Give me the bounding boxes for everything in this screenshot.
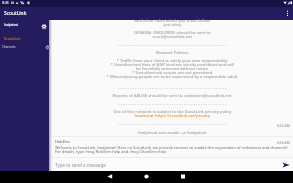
button[interactable]: [0, 38, 41, 46]
button[interactable]: [0, 20, 40, 31]
button[interactable]: [0, 31, 52, 38]
button[interactable]: Type to send a message: [55, 162, 281, 168]
button[interactable]: More options: [282, 7, 293, 20]
button[interactable]: Recents: [165, 171, 201, 183]
button[interactable]: Home: [128, 171, 165, 183]
button[interactable]: Send: [281, 160, 291, 170]
button[interactable]: Back: [92, 171, 128, 183]
button[interactable]: Channel settings: [41, 38, 49, 46]
button[interactable]: [52, 20, 293, 157]
button[interactable]: Settings: [40, 20, 49, 31]
